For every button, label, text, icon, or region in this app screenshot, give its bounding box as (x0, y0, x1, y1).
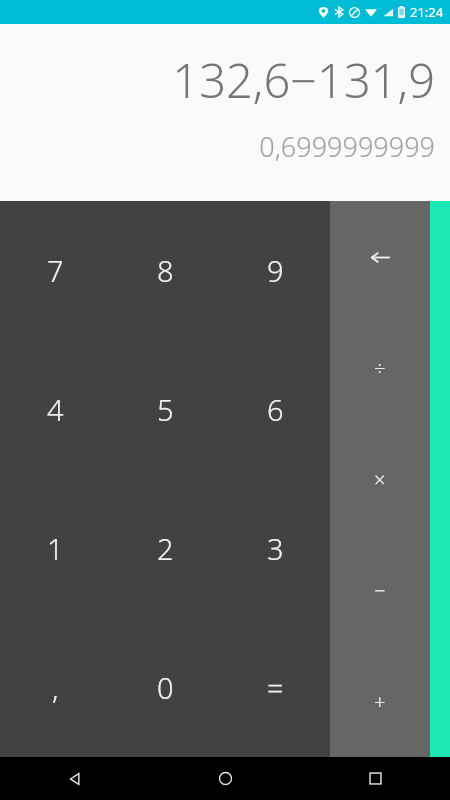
staticText: 132,6−131,9 (172, 48, 435, 112)
button[interactable]: , (0, 618, 110, 757)
staticText: 3 (267, 529, 284, 568)
button[interactable]: 5 (110, 340, 220, 479)
staticText: 2 (157, 529, 174, 568)
button[interactable]: Divide (330, 313, 430, 424)
button[interactable]: Backspace (330, 201, 430, 313)
button[interactable]: 6 (220, 340, 330, 479)
staticText: 5 (157, 390, 174, 429)
button[interactable]: 7 (0, 201, 110, 340)
staticText: 6 (267, 390, 284, 429)
staticText: × (374, 466, 386, 493)
button[interactable]: Add (330, 646, 430, 757)
staticText: = (267, 668, 284, 707)
button[interactable]: Multiply (330, 424, 430, 535)
button[interactable]: 0 (110, 618, 220, 757)
button[interactable]: 2 (110, 479, 220, 618)
button[interactable]: Back (0, 757, 150, 800)
staticText: 8 (157, 251, 174, 290)
button[interactable]: 8 (110, 201, 220, 340)
staticText: 1 (47, 529, 64, 568)
staticText: 7 (47, 251, 64, 290)
button[interactable]: Home (150, 757, 300, 800)
staticText: 21:24 (410, 3, 444, 21)
staticText: ÷ (374, 355, 386, 382)
staticText: , (52, 668, 59, 707)
button[interactable]: Subtract (330, 535, 430, 646)
staticText: 0 (157, 668, 174, 707)
staticText: + (374, 688, 386, 715)
button[interactable]: 3 (220, 479, 330, 618)
button[interactable]: 9 (220, 201, 330, 340)
staticText: 9 (267, 251, 284, 290)
button[interactable]: 4 (0, 340, 110, 479)
staticText: 0,6999999999 (259, 128, 435, 165)
staticText: 4 (47, 390, 64, 429)
staticText: − (374, 577, 386, 604)
button[interactable]: = (220, 618, 330, 757)
button[interactable]: Recent apps (300, 757, 450, 800)
button[interactable]: 1 (0, 479, 110, 618)
